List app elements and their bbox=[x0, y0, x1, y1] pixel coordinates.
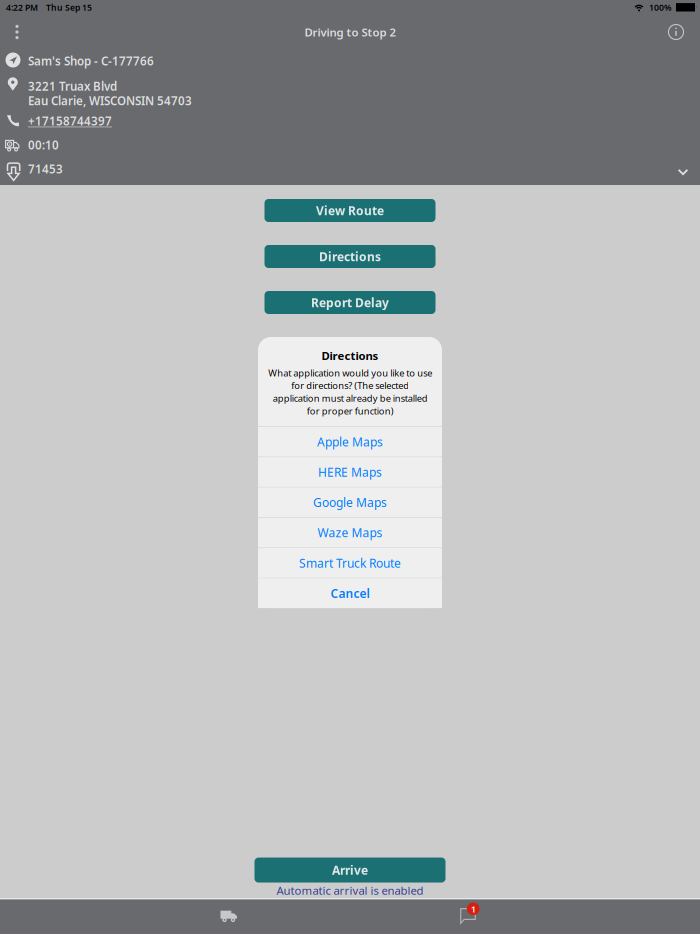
button[interactable]: Messages bbox=[434, 898, 502, 934]
staticText: Thu Sep 15 bbox=[46, 2, 92, 13]
button[interactable]: +17158744397 bbox=[28, 113, 112, 129]
staticText: Smart Truck Route bbox=[299, 555, 401, 571]
staticText: HERE Maps bbox=[318, 464, 382, 480]
button[interactable]: Arrive bbox=[254, 858, 445, 883]
button[interactable]: View Route bbox=[264, 199, 435, 222]
staticText: +17158744397 bbox=[28, 113, 112, 129]
staticText: 00:10 bbox=[28, 137, 59, 153]
button[interactable]: Report Delay bbox=[264, 291, 435, 314]
staticText: Directions bbox=[321, 348, 378, 363]
button[interactable]: Google Maps bbox=[258, 488, 442, 517]
staticText: 100% bbox=[649, 2, 672, 13]
staticText: Eau Clarie, WISCONSIN 54703 bbox=[28, 93, 192, 109]
staticText: 71453 bbox=[28, 161, 63, 177]
staticText: Apple Maps bbox=[317, 434, 383, 450]
button[interactable]: Apple Maps bbox=[258, 427, 442, 457]
staticText: Directions bbox=[319, 248, 381, 265]
staticText: 3221 Truax Blvd bbox=[28, 78, 117, 94]
button[interactable]: Info bbox=[660, 19, 692, 45]
button[interactable]: Trips bbox=[195, 898, 263, 934]
staticText: Automatic arrival is enabled bbox=[276, 883, 423, 898]
button[interactable]: Cancel bbox=[258, 578, 442, 608]
staticText: Report Delay bbox=[311, 294, 389, 311]
staticText: Arrive bbox=[332, 862, 368, 878]
staticText: Cancel bbox=[330, 585, 369, 601]
staticText: Google Maps bbox=[313, 494, 387, 510]
staticText: 4:22 PM bbox=[6, 2, 38, 13]
button[interactable]: Waze Maps bbox=[258, 518, 442, 547]
staticText: Waze Maps bbox=[317, 524, 382, 541]
button[interactable]: Directions bbox=[264, 245, 435, 268]
button[interactable]: Menu bbox=[1, 19, 33, 45]
button[interactable]: Collapse bbox=[668, 161, 698, 183]
staticText: Sam's Shop - C-177766 bbox=[28, 53, 154, 69]
staticText: View Route bbox=[316, 202, 384, 219]
staticText: 1 bbox=[471, 902, 476, 915]
staticText: Driving to Stop 2 bbox=[304, 24, 395, 40]
button[interactable]: HERE Maps bbox=[258, 457, 442, 487]
button[interactable]: Smart Truck Route bbox=[258, 548, 442, 578]
staticText: What application would you like to use f… bbox=[268, 366, 432, 417]
